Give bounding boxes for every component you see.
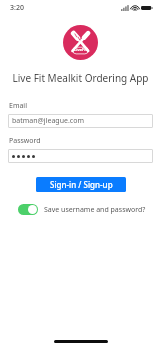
staticText: Live Fit Mealkit Ordering App [0, 71, 161, 85]
staticText: 3:20 [10, 3, 24, 13]
staticText: Password [9, 136, 41, 146]
button[interactable]: Sign-in / Sign-up [36, 177, 126, 192]
staticText: Email [9, 101, 27, 111]
staticText: batman@jleague.com [12, 116, 84, 126]
staticText: Save username and password? [44, 205, 146, 215]
button[interactable]: Save username and password toggle [18, 204, 38, 215]
staticText: LiveFit [74, 47, 88, 52]
staticText: Sign-in / Sign-up [50, 179, 113, 190]
button[interactable] [8, 149, 153, 163]
button[interactable]: batman@jleague.com [8, 114, 153, 128]
